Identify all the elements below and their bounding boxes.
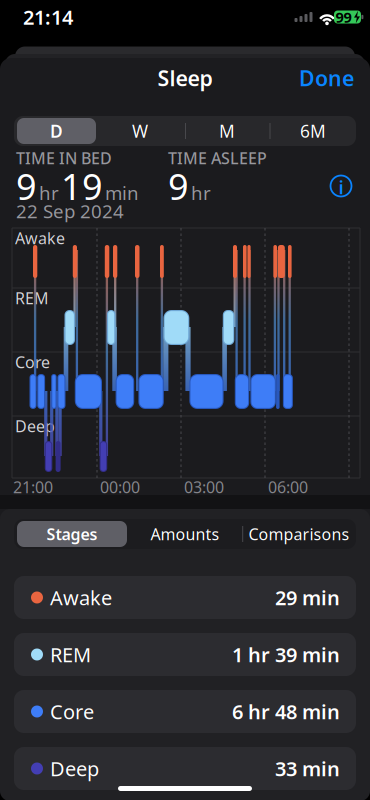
staticText: 9 xyxy=(168,162,189,210)
staticText: 6 hr 48 min xyxy=(232,698,340,725)
staticText: Amounts xyxy=(150,523,219,545)
button[interactable]: Comparisons xyxy=(243,520,355,548)
staticText: 03:00 xyxy=(184,476,224,498)
button[interactable]: W xyxy=(100,117,180,145)
button[interactable]: Awake xyxy=(14,576,356,619)
staticText: 22 Sep 2024 xyxy=(16,199,124,223)
staticText: Awake xyxy=(50,584,112,611)
staticText: Core xyxy=(15,351,50,373)
button[interactable]: Stages xyxy=(17,521,127,547)
staticText: 29 min xyxy=(275,584,340,611)
button[interactable]: Deep xyxy=(14,747,356,790)
button[interactable]: REM xyxy=(14,633,356,676)
button[interactable]: 6M xyxy=(273,117,353,145)
staticText: 99 xyxy=(335,7,351,27)
staticText: W xyxy=(132,119,148,142)
button[interactable]: Amounts xyxy=(130,520,240,548)
staticText: Done xyxy=(299,64,354,92)
staticText: 00:00 xyxy=(100,476,140,498)
staticText: Deep xyxy=(15,415,55,437)
button[interactable]: Core xyxy=(14,690,356,733)
staticText: 21:00 xyxy=(13,476,53,498)
button[interactable]: Done xyxy=(254,64,354,92)
staticText: min xyxy=(105,180,139,205)
staticText: M xyxy=(219,119,235,142)
staticText: i xyxy=(338,175,343,199)
staticText: Sleep xyxy=(157,64,212,92)
staticText: Awake xyxy=(15,227,65,249)
button[interactable]: M xyxy=(187,117,267,145)
button[interactable]: About Sleep xyxy=(330,174,351,198)
staticText: Deep xyxy=(50,755,99,782)
staticText: REM xyxy=(50,641,91,668)
staticText: D xyxy=(50,119,63,142)
button[interactable]: D xyxy=(17,118,96,144)
staticText: TIME IN BED xyxy=(16,147,112,169)
staticText: hr xyxy=(191,180,211,205)
staticText: 6M xyxy=(300,119,326,142)
staticText: 9 xyxy=(16,162,37,210)
staticText: REM xyxy=(15,287,49,309)
staticText: 19 xyxy=(61,162,103,210)
staticText: 21:14 xyxy=(23,4,73,30)
staticText: Stages xyxy=(46,523,97,545)
staticText: hr xyxy=(39,180,59,205)
staticText: TIME ASLEEP xyxy=(168,147,267,169)
staticText: Comparisons xyxy=(248,523,349,545)
staticText: Core xyxy=(50,698,94,725)
staticText: 1 hr 39 min xyxy=(232,641,340,668)
staticText: 06:00 xyxy=(268,476,308,498)
staticText: 33 min xyxy=(275,755,340,782)
